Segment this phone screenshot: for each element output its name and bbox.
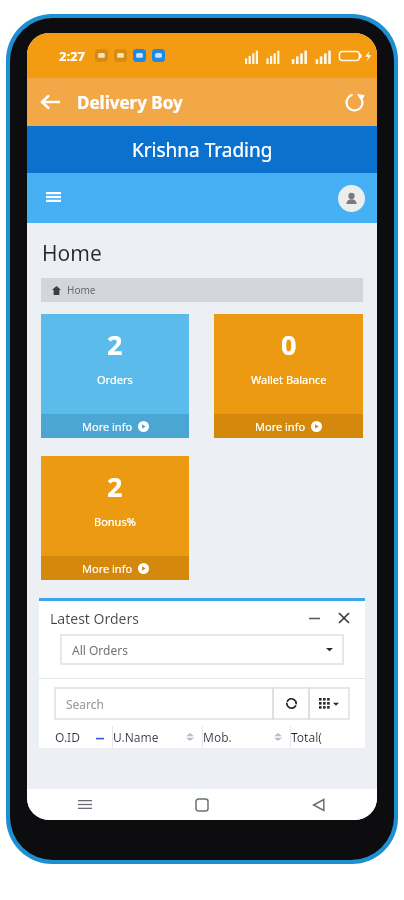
staticText: Krishna Trading bbox=[132, 137, 273, 163]
button[interactable]: Columns bbox=[309, 688, 349, 719]
button[interactable]: All Orders bbox=[61, 635, 343, 664]
staticText: More info bbox=[82, 561, 133, 576]
staticText: O.ID bbox=[55, 729, 80, 745]
staticText: 2 bbox=[107, 468, 123, 505]
button[interactable]: Refresh bbox=[331, 79, 377, 125]
button[interactable]: Menu bbox=[35, 180, 71, 216]
button[interactable]: 2 bbox=[41, 456, 189, 580]
staticText: U.Name bbox=[113, 729, 159, 745]
staticText: Home bbox=[67, 283, 96, 297]
button[interactable]: Back bbox=[27, 79, 73, 125]
button[interactable]: 2 bbox=[41, 314, 189, 438]
button[interactable]: 0 bbox=[214, 314, 363, 438]
staticText: 0 bbox=[281, 326, 297, 363]
staticText: 2 bbox=[107, 326, 123, 363]
button[interactable]: Back bbox=[260, 789, 377, 820]
staticText: Search bbox=[66, 696, 104, 712]
staticText: More info bbox=[82, 419, 133, 434]
button[interactable]: Close bbox=[334, 608, 354, 628]
button[interactable]: Collapse bbox=[304, 608, 324, 628]
staticText: Delivery Boy bbox=[77, 91, 183, 114]
staticText: Home bbox=[42, 239, 102, 268]
staticText: More info bbox=[255, 419, 306, 434]
staticText: Orders bbox=[97, 372, 133, 387]
button[interactable]: Recents bbox=[27, 789, 143, 820]
staticText: Total( bbox=[291, 729, 322, 745]
staticText: Bonus% bbox=[94, 514, 136, 529]
staticText: 2:27 bbox=[59, 47, 85, 65]
staticText: Mob. bbox=[203, 729, 232, 745]
button[interactable]: Home bbox=[143, 789, 260, 820]
button[interactable]: Profile bbox=[338, 185, 365, 212]
staticText: All Orders bbox=[72, 642, 128, 658]
button[interactable]: Reload bbox=[273, 688, 309, 719]
staticText: Wallet Balance bbox=[251, 372, 327, 387]
staticText: Latest Orders bbox=[50, 609, 139, 628]
button[interactable]: Search bbox=[55, 688, 273, 719]
